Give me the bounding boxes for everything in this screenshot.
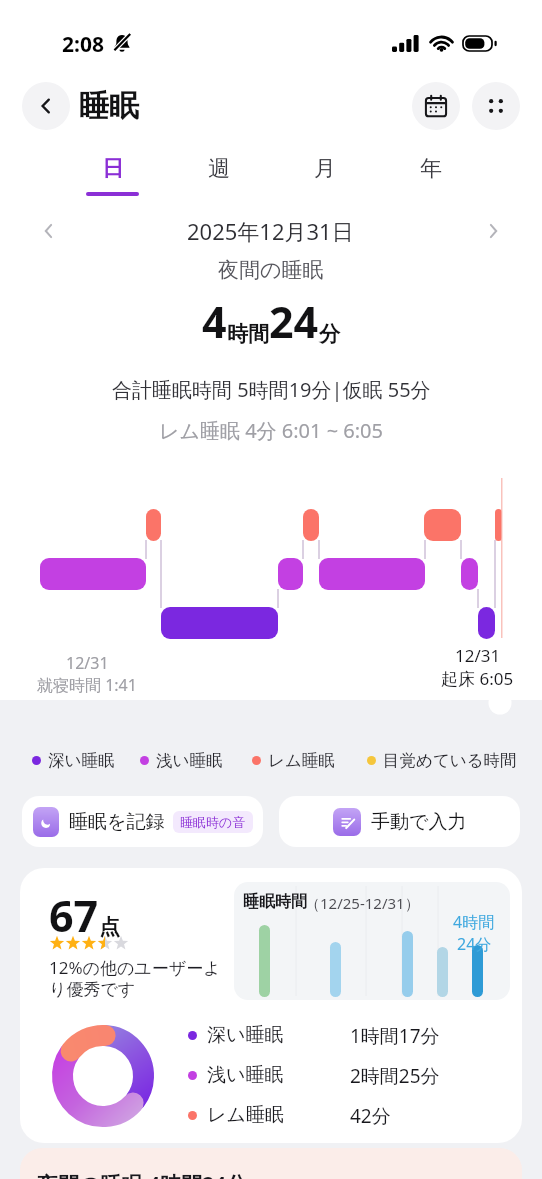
button[interactable]: 年 (377, 155, 483, 197)
button[interactable]: 月 (271, 155, 377, 197)
button[interactable]: 週 (165, 155, 271, 197)
staticText: （12/25-12/31） (305, 893, 420, 913)
staticText: 睡眠時の音 (180, 814, 246, 830)
button[interactable]: Next day (478, 216, 508, 246)
staticText: 4 (202, 292, 227, 351)
staticText: 睡眠時間 (243, 892, 307, 912)
staticText: レム睡眠 (207, 1103, 350, 1127)
staticText: 手動で入力 (371, 810, 467, 834)
button[interactable]: 日 (59, 155, 165, 197)
button[interactable]: More options (472, 82, 520, 130)
staticText: 深い睡眠 (48, 750, 115, 771)
button[interactable]: 手動で入力 (279, 796, 520, 847)
staticText: 4時間 (453, 911, 495, 933)
staticText: 起床 6:05 (441, 667, 514, 690)
staticText: 2時間25分 (350, 1063, 440, 1087)
staticText: レム睡眠 4分 6:01 ~ 6:05 (159, 417, 383, 444)
staticText: 浅い睡眠 (156, 750, 223, 771)
staticText: 12%の他のユーザーよ (49, 956, 221, 979)
staticText: 睡眠を記録 (69, 810, 165, 834)
staticText: 夜間の睡眠 (218, 257, 324, 283)
staticText: 点 (99, 914, 120, 940)
staticText: 年 (420, 155, 442, 183)
staticText: 12/31 (455, 644, 501, 667)
staticText: 夜間の睡眠 4時間24分 (37, 1170, 247, 1179)
staticText: 42分 (350, 1103, 391, 1127)
staticText: レム睡眠 (268, 750, 335, 771)
button[interactable]: 夜間の睡眠 4時間24分 (20, 1148, 522, 1179)
staticText: 合計睡眠時間 5時間19分|仮眠 55分 (112, 376, 431, 403)
staticText: 浅い睡眠 (207, 1063, 350, 1087)
staticText: 目覚めている時間 (383, 750, 517, 771)
staticText: 分 (319, 321, 340, 347)
button[interactable]: Previous day (34, 216, 64, 246)
staticText: 睡眠 (79, 87, 139, 125)
staticText: 週 (208, 155, 230, 183)
staticText: 24分 (457, 933, 492, 955)
staticText: 深い睡眠 (207, 1023, 350, 1047)
staticText: 1時間17分 (350, 1023, 440, 1047)
button[interactable]: Back (22, 82, 70, 130)
staticText: 2:08 (62, 30, 104, 56)
staticText: 67 (49, 886, 99, 945)
button[interactable]: Calendar (412, 82, 460, 130)
staticText: 12/31 (66, 652, 109, 674)
staticText: 2025年12月31日 (187, 216, 354, 246)
staticText: 就寝時間 1:41 (37, 674, 137, 696)
staticText: 時間 (227, 321, 269, 347)
staticText: 日 (102, 155, 124, 183)
button[interactable]: 睡眠を記録 (22, 796, 263, 847)
staticText: り優秀です (49, 979, 136, 1000)
staticText: 月 (314, 155, 336, 183)
staticText: 24 (269, 292, 319, 351)
